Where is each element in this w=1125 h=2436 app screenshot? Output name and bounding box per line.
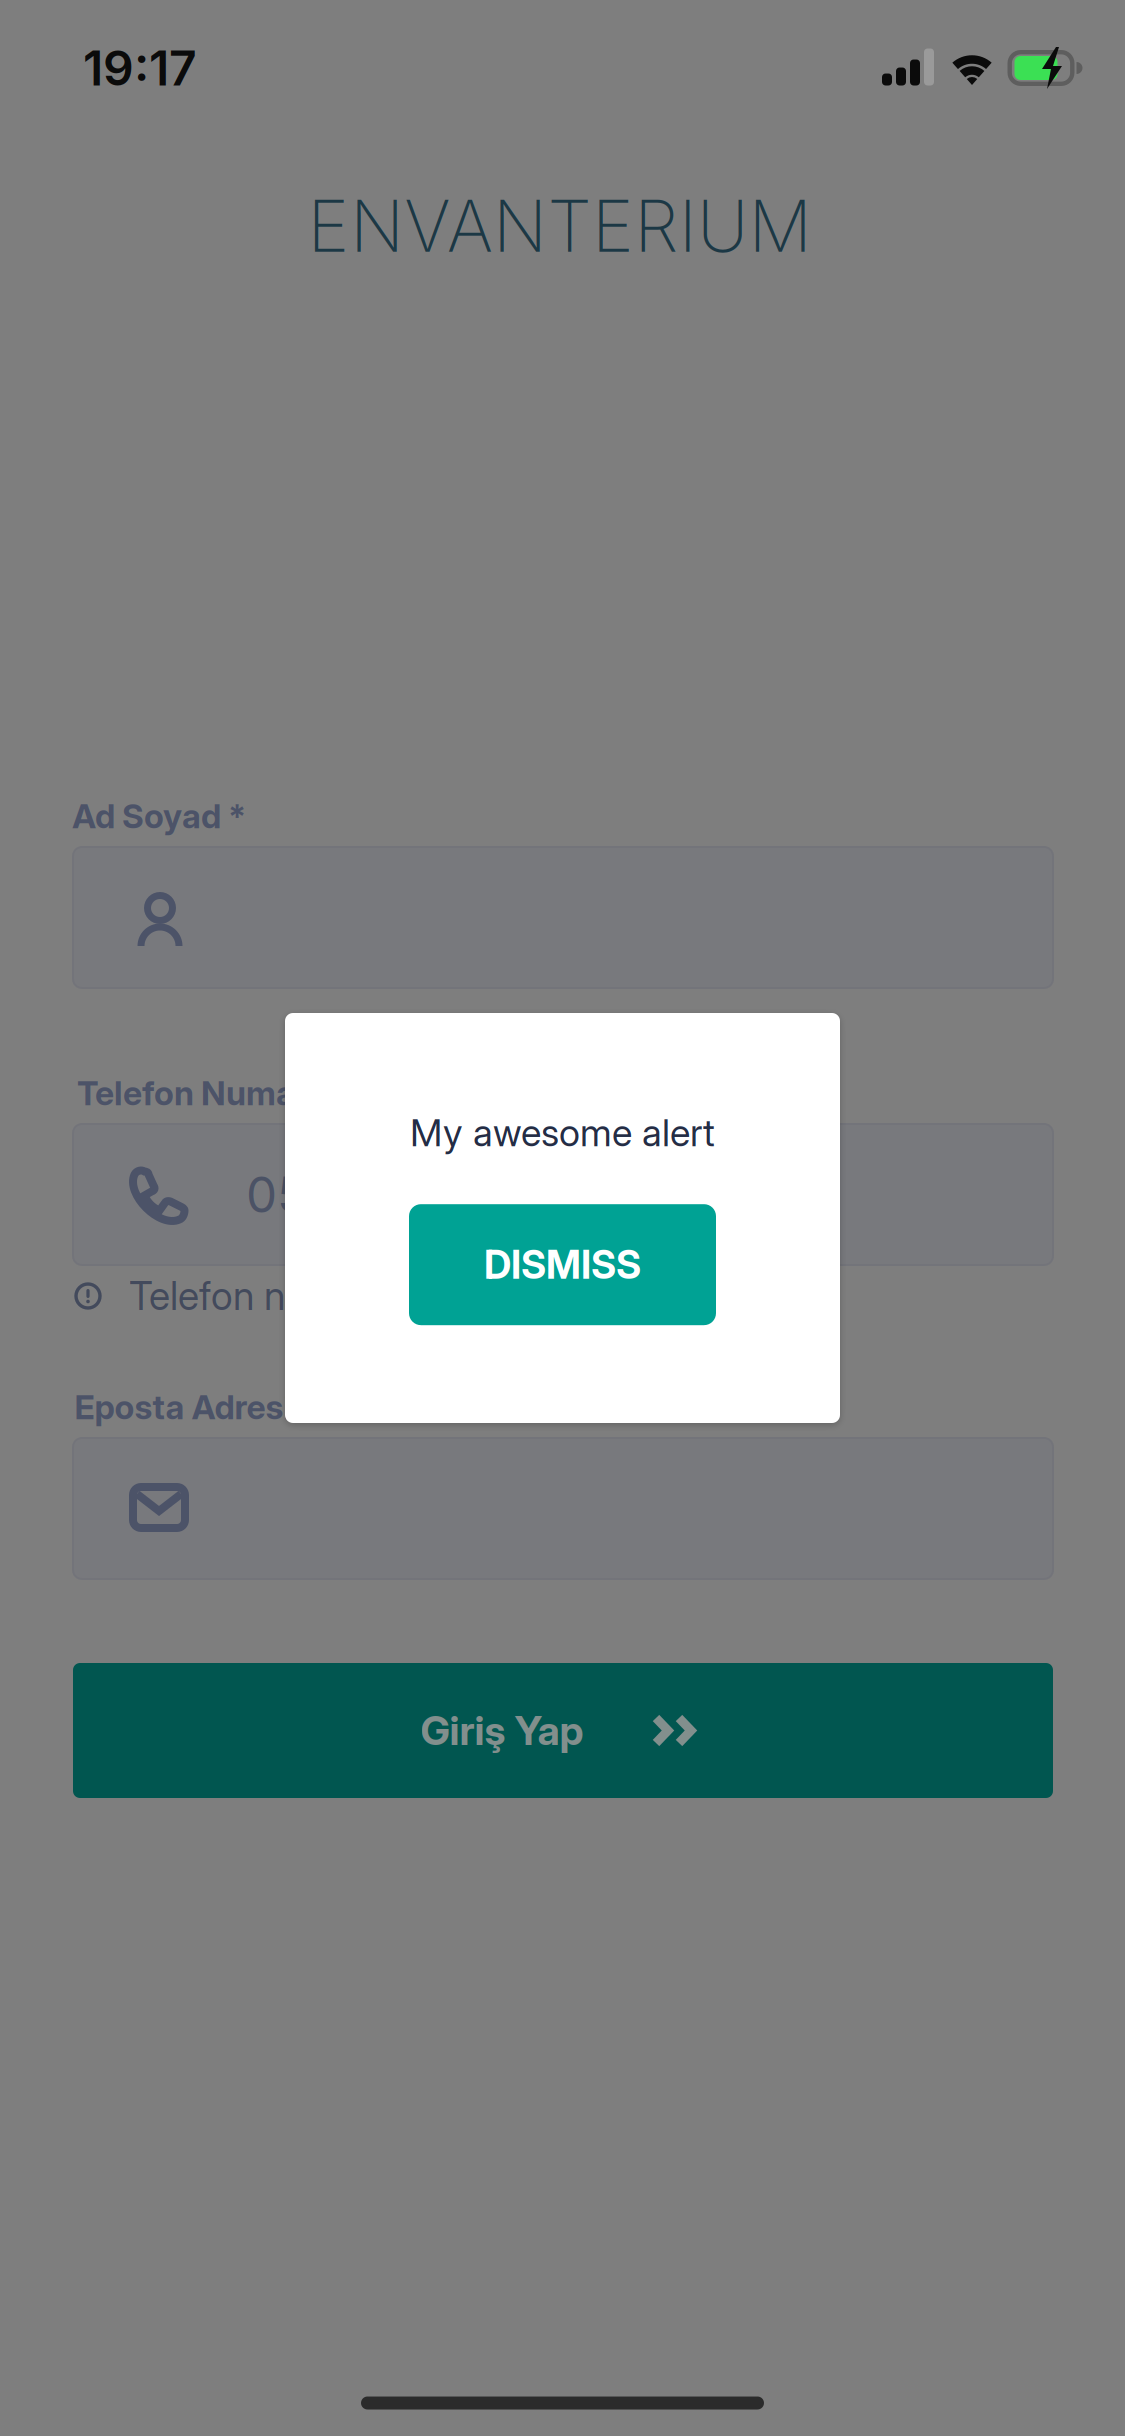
- staticText: 19:17: [83, 39, 197, 97]
- staticText: DISMISS: [484, 1241, 641, 1288]
- staticText: Giriş Yap: [420, 1706, 583, 1755]
- staticText: Ad Soyad *: [72, 796, 246, 836]
- staticText: My awesome alert: [410, 1110, 715, 1155]
- button[interactable]: [73, 847, 1053, 988]
- button[interactable]: [73, 1438, 1053, 1579]
- staticText: 05XX XXX XX XX: [246, 1165, 655, 1224]
- staticText: Telefon numarası zorunludur: [129, 1273, 608, 1319]
- staticText: ENVANTERIUM: [307, 183, 811, 269]
- staticText: Eposta Adresiniz: [74, 1387, 339, 1427]
- button[interactable]: DISMISS: [409, 1204, 716, 1325]
- button[interactable]: 05XX XXX XX XX: [73, 1124, 1053, 1265]
- button[interactable]: Giriş Yap: [73, 1663, 1053, 1798]
- staticText: Telefon Numarası *: [77, 1073, 379, 1113]
